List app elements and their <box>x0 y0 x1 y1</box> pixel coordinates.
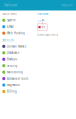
staticText: Dashboard <box>3 3 17 7</box>
button[interactable]: Monitoring <box>0 69 36 75</box>
button[interactable]: E-Mail <box>0 23 36 30</box>
staticText: Limits exceeded <box>37 33 58 37</box>
button[interactable]: Databases <box>0 50 36 56</box>
staticText: SERVICES <box>2 38 13 42</box>
button[interactable]: System <box>0 17 36 23</box>
staticText: Web Hosting <box>7 31 25 35</box>
staticText: Migration <box>7 83 20 87</box>
staticText: Error <box>42 18 45 36</box>
staticText: Security <box>7 64 17 67</box>
staticText: Advanced Tools <box>7 77 28 80</box>
button[interactable]: Billing <box>0 88 36 95</box>
staticText: Status <box>37 19 44 22</box>
button[interactable]: Web Hosting <box>0 30 36 36</box>
staticText: Backups <box>7 57 17 61</box>
button[interactable]: Advanced Tools <box>0 75 36 82</box>
staticText: Billing <box>7 90 17 93</box>
staticText: System <box>7 18 15 22</box>
staticText: Monitoring <box>7 70 23 74</box>
button[interactable]: Domain Names <box>0 43 36 50</box>
staticText: Databases <box>7 51 19 54</box>
button[interactable]: Backups <box>0 56 36 62</box>
button[interactable]: Security <box>0 62 36 69</box>
staticText: Account <box>61 3 72 7</box>
button[interactable]: Migration <box>0 82 36 88</box>
staticText: Overview <box>37 12 48 16</box>
staticText: Domain Names <box>7 45 26 48</box>
staticText: MAIN MENU <box>2 12 17 16</box>
staticText: E-Mail <box>7 25 14 28</box>
